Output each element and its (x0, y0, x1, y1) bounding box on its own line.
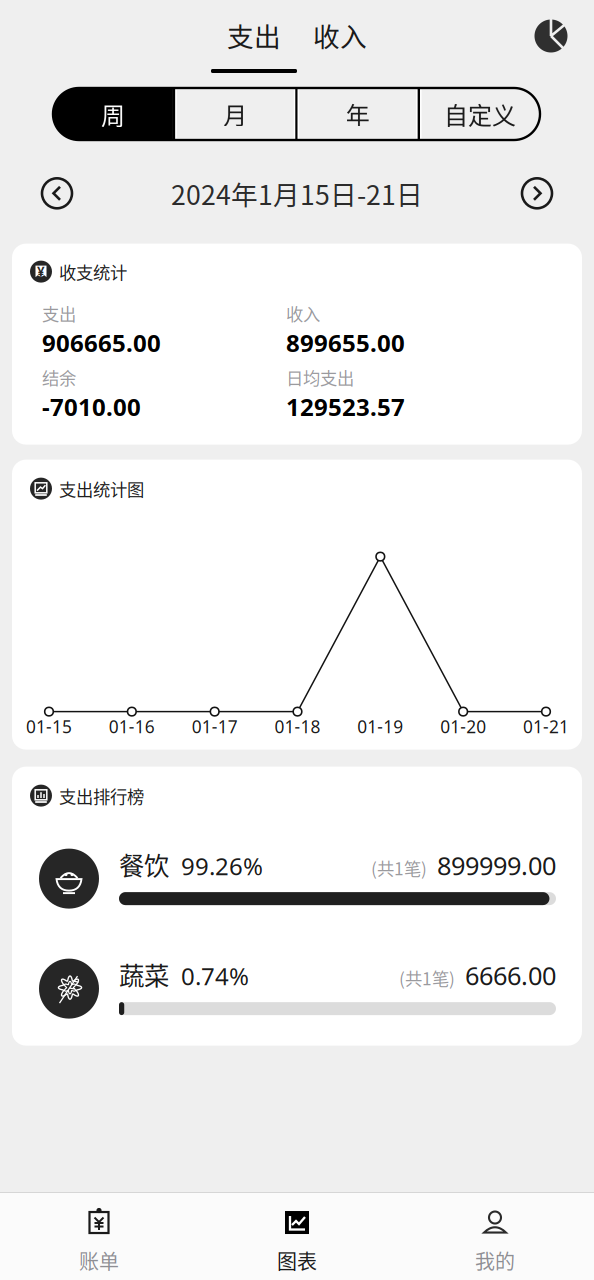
staticText: 收入 (286, 301, 320, 326)
staticText: 6666.00 (465, 958, 556, 992)
staticText: 01-20 (440, 715, 486, 738)
button[interactable]: 月 (175, 88, 295, 140)
staticText: 收入 (313, 16, 367, 54)
button[interactable]: 收入 (297, 20, 383, 73)
staticText: 0.74% (181, 960, 249, 992)
staticText: 2024年1月15日-21日 (171, 174, 423, 213)
staticText: 年 (346, 97, 370, 131)
button[interactable]: Chart style (534, 19, 568, 53)
staticText: 01-18 (274, 715, 320, 738)
staticText: 支出统计图 (59, 476, 144, 501)
staticText: 99.26% (181, 850, 263, 882)
staticText: 账单 (79, 1246, 119, 1275)
staticText: 01-16 (109, 715, 155, 738)
staticText: 01-19 (357, 715, 403, 738)
staticText: 899999.00 (437, 848, 556, 882)
button[interactable]: 自定义 (420, 88, 540, 140)
staticText: 01-17 (192, 715, 238, 738)
button[interactable]: 周 (53, 88, 173, 140)
button[interactable]: 账单 (0, 1193, 198, 1280)
staticText: 01-21 (523, 715, 569, 738)
button[interactable]: 图表 (198, 1193, 396, 1280)
staticText: (共1笔) (371, 855, 427, 880)
staticText: 日均支出 (286, 365, 354, 390)
staticText: 月 (223, 97, 247, 131)
staticText: 餐饮 (119, 846, 169, 882)
button[interactable]: 支出 (211, 20, 297, 73)
button[interactable]: Next period (520, 176, 554, 210)
staticText: 支出排行榜 (59, 783, 144, 808)
staticText: -7010.00 (42, 391, 141, 423)
staticText: 收支统计 (59, 259, 127, 284)
staticText: 自定义 (444, 97, 516, 131)
staticText: 906665.00 (42, 327, 161, 359)
staticText: 01-15 (26, 715, 72, 738)
button[interactable]: 我的 (396, 1193, 594, 1280)
staticText: ¥ (37, 263, 45, 280)
staticText: 899655.00 (286, 327, 405, 359)
staticText: 支出 (42, 301, 76, 326)
staticText: (共1笔) (399, 965, 455, 990)
staticText: 周 (101, 97, 125, 131)
staticText: 支出 (227, 16, 281, 54)
staticText: 蔬菜 (119, 956, 169, 992)
staticText: 我的 (475, 1246, 515, 1275)
staticText: 图表 (277, 1246, 317, 1275)
button[interactable]: 年 (298, 88, 418, 140)
staticText: 129523.57 (286, 391, 405, 423)
button[interactable]: Previous period (40, 176, 74, 210)
staticText: 结余 (42, 365, 76, 390)
